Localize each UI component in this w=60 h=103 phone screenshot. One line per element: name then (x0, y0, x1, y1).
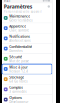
staticText: Notifications (9, 34, 30, 39)
staticText: 64 Go libres (9, 80, 27, 83)
button[interactable]: Options (2, 95, 52, 103)
staticText: Confidentialité (9, 44, 32, 49)
button[interactable]: Maintenance (2, 13, 52, 23)
button[interactable]: Compte (48, 5, 50, 8)
button[interactable]: Notifications (2, 33, 52, 44)
button[interactable]: Mise à jour (2, 64, 52, 74)
staticText: Paramètres (4, 3, 33, 10)
staticText: Alertes et sons (9, 39, 30, 43)
staticText: Maintenance (9, 14, 30, 18)
staticText: 3 connectés (9, 90, 26, 94)
staticText: Version 12.4 (9, 69, 28, 73)
button[interactable]: Apparence (2, 23, 52, 33)
staticText: Données (9, 49, 22, 53)
button[interactable]: Sécurité (2, 54, 52, 64)
staticText: Sécurité (9, 54, 22, 59)
staticText: Mot de passe (9, 59, 29, 63)
staticText: Mise à jour (9, 65, 27, 69)
button[interactable]: Confidentialité (2, 44, 52, 54)
staticText: 9:41 (4, 0, 11, 3)
staticText: Clair, sombre (9, 29, 29, 32)
staticText: Stockage (9, 75, 24, 80)
button[interactable]: Stockage (2, 74, 52, 84)
staticText: Comptes (9, 85, 23, 90)
staticText: Développeur (9, 100, 28, 103)
staticText: Apparence (9, 24, 26, 29)
staticText: Personnalisez votre appareil (4, 10, 42, 13)
button[interactable]: Comptes (2, 84, 52, 95)
staticText: Gérer les tâches (9, 18, 32, 22)
staticText: Options (9, 95, 22, 100)
